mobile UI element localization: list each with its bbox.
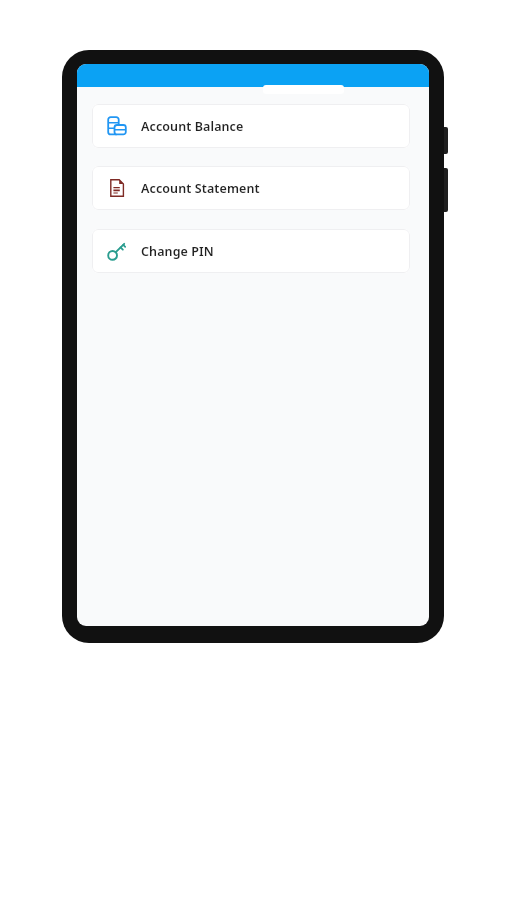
staticText: Account Balance: [141, 118, 244, 135]
staticText: Account Statement: [141, 180, 260, 197]
staticText: Change PIN: [141, 243, 214, 260]
button[interactable]: Account Statement: [92, 166, 410, 210]
button[interactable]: Account Balance: [92, 104, 410, 148]
button[interactable]: Change PIN: [92, 229, 410, 273]
